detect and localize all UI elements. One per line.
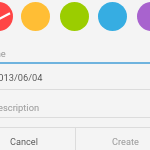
button[interactable]: Red [0,2,13,31]
button[interactable]: 2013/06/04 [0,68,90,89]
staticText: Description [0,102,40,113]
button[interactable]: Name [0,46,90,62]
staticText: 2013/06/04 [0,72,43,83]
button[interactable]: Purple [137,2,150,31]
button[interactable]: Blue [98,2,127,31]
staticText: Cancel [10,136,38,147]
button[interactable]: Cancel [0,131,72,150]
button[interactable]: Green [60,2,89,31]
button[interactable]: Description [0,90,90,118]
button[interactable]: Yellow [21,2,50,31]
staticText: Create [112,136,139,147]
staticText: Name [0,48,6,59]
button[interactable]: Create [77,131,150,150]
